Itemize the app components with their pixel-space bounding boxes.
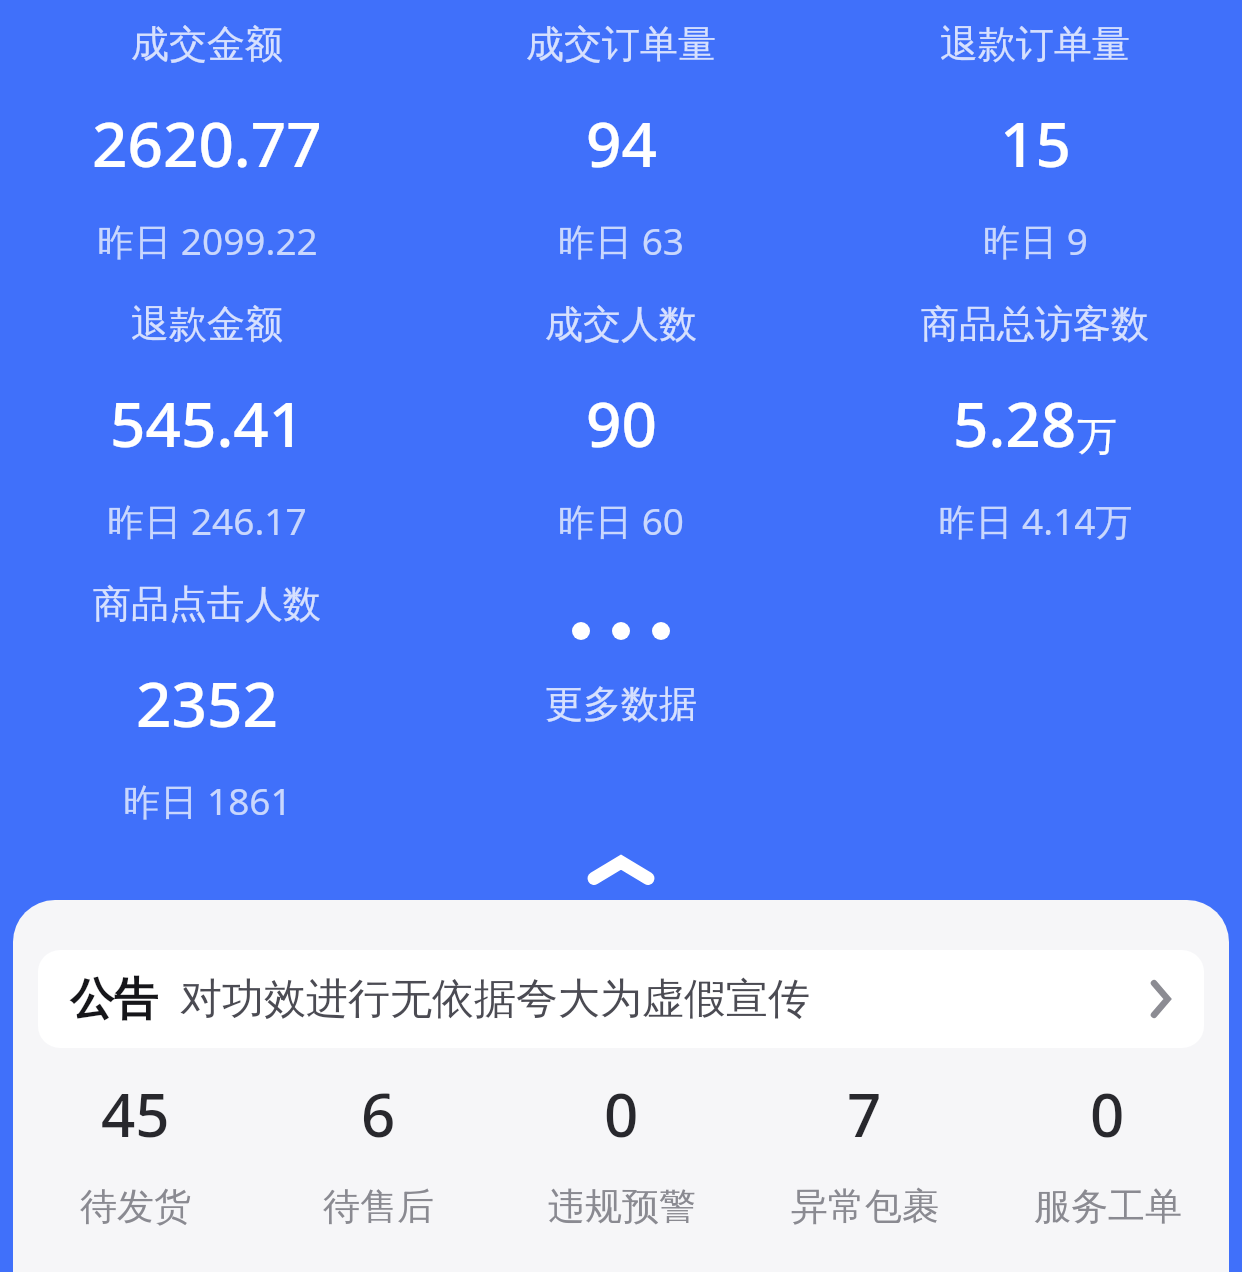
staticText: 昨日 2099.22 (97, 215, 318, 266)
button[interactable]: 0 (500, 1073, 743, 1230)
button[interactable]: 公告 (38, 950, 1204, 1048)
staticText: 成交订单量 (526, 20, 716, 68)
button[interactable]: 成交金额 (0, 0, 414, 280)
staticText: 待发货 (80, 1183, 191, 1230)
button[interactable]: 退款订单量 (828, 0, 1242, 280)
staticText: 成交人数 (545, 300, 697, 348)
staticText: 待售后 (323, 1183, 434, 1230)
staticText: 异常包裹 (791, 1183, 939, 1230)
staticText: 昨日 4.14万 (938, 495, 1133, 546)
button[interactable]: 商品总访客数 (828, 280, 1242, 560)
staticText: 90 (586, 381, 657, 465)
staticText: 15 (1000, 101, 1071, 185)
staticText: 545.41 (110, 381, 305, 465)
staticText: 商品总访客数 (921, 300, 1149, 348)
staticText: 退款订单量 (940, 20, 1130, 68)
staticText: 昨日 246.17 (107, 495, 307, 546)
button[interactable]: 6 (257, 1073, 500, 1230)
staticText: 94 (586, 101, 657, 185)
button[interactable]: 收起 (0, 840, 1242, 900)
staticText: 服务工单 (1034, 1183, 1182, 1230)
staticText: 6 (361, 1073, 396, 1155)
staticText: 万 (1077, 411, 1117, 461)
staticText: 昨日 60 (558, 495, 684, 546)
staticText: 更多数据 (545, 680, 697, 728)
staticText: 成交金额 (131, 20, 283, 68)
staticText: 违规预警 (548, 1183, 696, 1230)
staticText: 7 (847, 1073, 882, 1155)
staticText: 0 (1090, 1073, 1125, 1155)
button[interactable]: 成交订单量 (414, 0, 828, 280)
button[interactable]: 0 (986, 1073, 1229, 1230)
staticText: 0 (604, 1073, 639, 1155)
staticText: 退款金额 (131, 300, 283, 348)
staticText: 45 (101, 1073, 170, 1155)
button[interactable]: 45 (13, 1073, 257, 1230)
button[interactable]: 7 (743, 1073, 986, 1230)
staticText: 商品点击人数 (93, 580, 321, 628)
staticText: 2352 (136, 661, 278, 745)
button[interactable]: 商品点击人数 (0, 560, 414, 840)
staticText: 昨日 1861 (123, 775, 292, 826)
staticText: 5.28 (953, 381, 1077, 465)
button[interactable]: 成交人数 (414, 280, 828, 560)
staticText: 昨日 9 (983, 215, 1088, 266)
staticText: 公告 (70, 972, 158, 1027)
staticText: 2620.77 (92, 101, 322, 185)
staticText: 昨日 63 (558, 215, 684, 266)
button[interactable]: 更多数据 (414, 560, 828, 840)
staticText: 对功效进行无依据夸大为虚假宣传 (180, 973, 810, 1026)
button[interactable]: 退款金额 (0, 280, 414, 560)
